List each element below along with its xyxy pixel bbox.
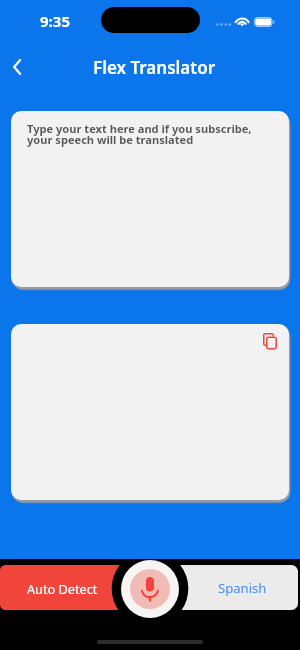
staticText: Spanish	[218, 579, 267, 597]
button[interactable]: Back	[3, 52, 33, 82]
button[interactable]: Record voice	[121, 560, 179, 618]
button[interactable]: Copy translation	[260, 331, 280, 351]
button[interactable]: Spanish	[178, 565, 298, 610]
button[interactable]: Copy translation	[11, 324, 289, 500]
staticText: Auto Detect	[27, 580, 98, 597]
staticText: 9:35	[40, 11, 70, 31]
button[interactable]: Auto Detect	[0, 565, 122, 610]
staticText: Flex Translator	[93, 56, 216, 79]
staticText: Type your text here and if you subscribe…	[27, 121, 252, 147]
button[interactable]: Type your text here and if you subscribe…	[11, 111, 289, 287]
